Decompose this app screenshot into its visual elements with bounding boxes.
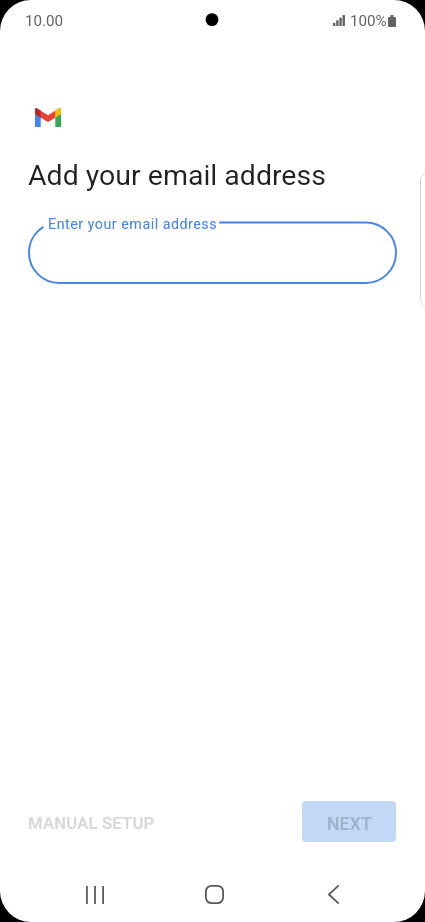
staticText: Enter your email address bbox=[48, 216, 218, 233]
staticText: MANUAL SETUP bbox=[28, 814, 155, 834]
button[interactable]: Back bbox=[298, 870, 368, 919]
button[interactable]: Recent apps bbox=[60, 870, 130, 919]
button[interactable]: Enter your email address bbox=[29, 212, 396, 294]
button[interactable]: MANUAL SETUP bbox=[22, 807, 161, 841]
staticText: NEXT bbox=[327, 814, 372, 835]
staticText: 100% bbox=[350, 12, 387, 30]
button[interactable]: NEXT bbox=[302, 801, 396, 842]
button[interactable]: Home bbox=[179, 870, 249, 919]
staticText: 10.00 bbox=[25, 12, 64, 30]
staticText: Add your email address bbox=[28, 159, 326, 192]
button[interactable]: Edge panel handle bbox=[420, 173, 425, 306]
